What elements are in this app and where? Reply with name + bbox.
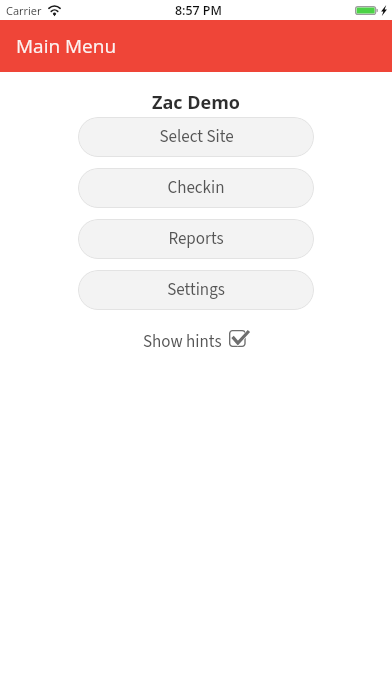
staticText: Checkin [167, 176, 225, 200]
staticText: Select Site [159, 125, 234, 149]
other: Wi-Fi [49, 6, 60, 16]
staticText: Main Menu [16, 33, 117, 59]
staticText: 8:57 PM [175, 2, 222, 19]
staticText: Settings [167, 278, 225, 302]
staticText: Reports [168, 227, 224, 251]
staticText: Show hints [143, 330, 222, 354]
staticText: Zac Demo [152, 90, 241, 115]
staticText: Carrier [6, 3, 42, 18]
button[interactable]: Checkin [78, 168, 314, 208]
other: Battery charging [355, 6, 378, 15]
button[interactable]: Select Site [78, 117, 314, 157]
button[interactable]: Reports [78, 219, 314, 259]
button[interactable]: Settings [78, 270, 314, 310]
button[interactable]: Show hints [139, 328, 252, 356]
other: Show hints checkbox [229, 330, 248, 347]
